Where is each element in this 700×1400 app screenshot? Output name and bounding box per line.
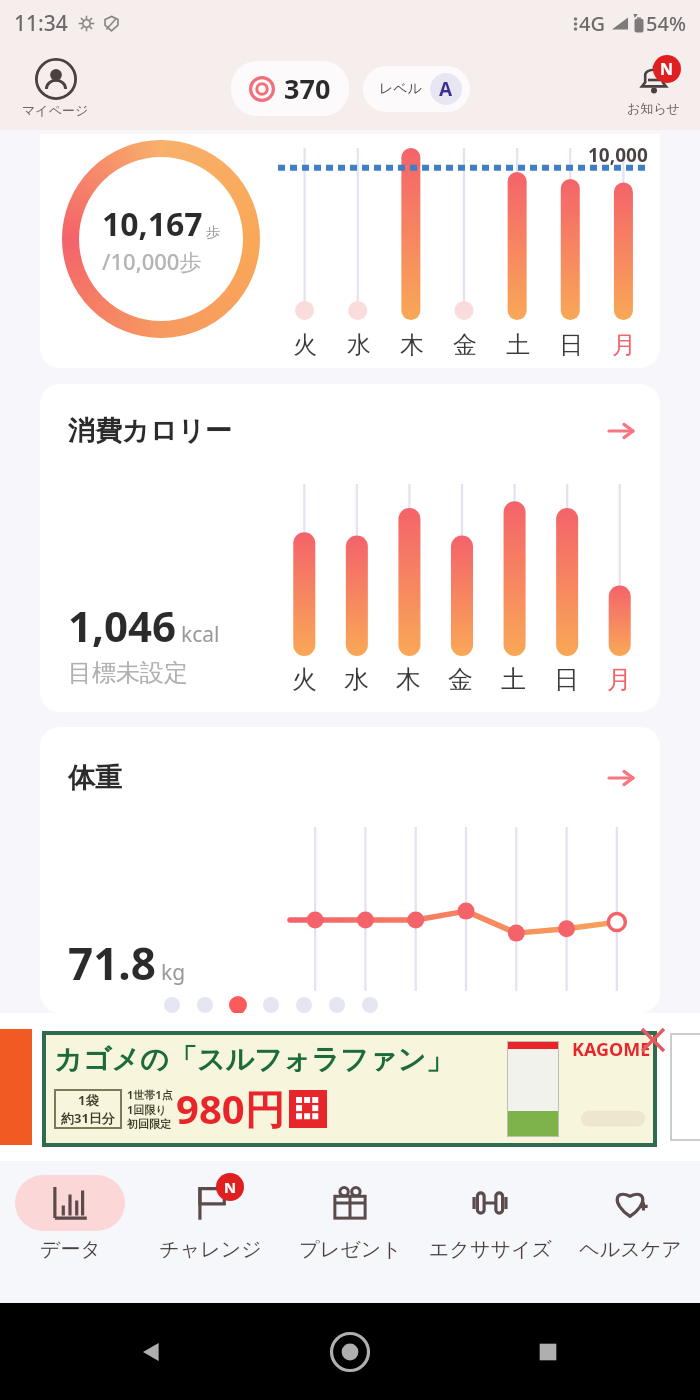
staticText: エクササイズ	[429, 1237, 552, 1262]
staticText: KAGOME	[572, 1037, 651, 1062]
staticText: プレゼント	[299, 1237, 402, 1262]
staticText: 71.8	[68, 933, 156, 993]
staticText: N	[660, 58, 674, 80]
staticText: カゴメの「スルフォラファン」	[54, 1042, 454, 1077]
staticText: 金	[448, 664, 473, 695]
staticText: 歩	[206, 224, 220, 242]
staticText: 4G	[579, 10, 605, 37]
staticText: A	[439, 76, 453, 102]
staticText: 1袋	[78, 1091, 99, 1109]
staticText: kcal	[181, 620, 220, 649]
staticText: データ	[40, 1237, 101, 1262]
staticText: 月	[607, 664, 632, 695]
staticText: 1,046	[68, 597, 177, 654]
staticText: kg	[161, 958, 186, 987]
staticText: 土	[506, 330, 530, 360]
staticText: 1世帯1点	[127, 1087, 173, 1102]
staticText: 体重	[68, 761, 122, 795]
staticText: チャレンジ	[159, 1237, 262, 1262]
staticText: ヘルスケア	[579, 1237, 682, 1262]
staticText: 水	[344, 664, 369, 695]
staticText: 木	[400, 330, 424, 360]
staticText: 木	[396, 664, 421, 695]
staticText: 水	[347, 330, 371, 360]
button[interactable]: レベル	[363, 66, 470, 112]
button[interactable]: 体重	[40, 727, 660, 1013]
staticText: 目標未設定	[68, 658, 188, 688]
staticText: 日	[559, 330, 583, 360]
staticText: 初回限定	[127, 1117, 171, 1131]
button[interactable]: 詳細を見る	[606, 416, 636, 446]
button[interactable]: エクササイズ	[420, 1161, 560, 1303]
staticText: 土	[501, 664, 526, 695]
button[interactable]: ヘルスケア	[560, 1161, 700, 1303]
staticText: 54%	[646, 10, 686, 37]
button[interactable]: データ	[0, 1161, 140, 1303]
staticText: お知らせ	[627, 100, 680, 116]
button[interactable]: カゴメの「スルフォラファン」	[46, 1035, 653, 1143]
button[interactable]: 広告を閉じる	[640, 1027, 666, 1053]
button[interactable]: プレゼント	[280, 1161, 420, 1303]
staticText: 11:34	[14, 9, 68, 38]
button[interactable]: 消費カロリー	[40, 384, 660, 712]
staticText: 月	[612, 330, 636, 360]
staticText: 火	[293, 330, 317, 360]
staticText: N	[224, 1177, 237, 1197]
button[interactable]: 詳細を見る	[606, 763, 636, 793]
staticText: レベル	[379, 80, 422, 98]
button[interactable]: N	[140, 1161, 280, 1303]
staticText: マイページ	[22, 102, 89, 118]
staticText: 消費カロリー	[68, 414, 232, 448]
staticText: 370	[284, 70, 331, 107]
staticText: 980円	[176, 1081, 285, 1136]
staticText: 日	[554, 664, 579, 695]
staticText: 1回限り	[127, 1102, 167, 1117]
button[interactable]: 10,167	[40, 134, 660, 368]
button[interactable]: 370	[231, 61, 349, 116]
button[interactable]: お知らせ	[625, 60, 682, 116]
staticText: 10,167	[102, 202, 203, 246]
staticText: 約31日分	[61, 1109, 115, 1127]
button[interactable]: マイページ	[18, 56, 93, 120]
staticText: /10,000歩	[102, 246, 202, 276]
staticText: 10,000	[588, 142, 648, 168]
staticText: 火	[292, 664, 317, 695]
staticText: 金	[453, 330, 477, 360]
